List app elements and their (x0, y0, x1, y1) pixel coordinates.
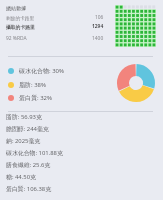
staticText: 蛋白質: 106.38克 (6, 185, 52, 193)
staticText: 脂肪: 38% (19, 81, 47, 89)
staticText: 鈉: 2025毫克 (6, 137, 41, 145)
staticText: 膳食纖維: 25.6克 (6, 161, 51, 169)
other: colour swatch (8, 68, 14, 74)
button[interactable]: 糖: 44.50克 (0, 171, 163, 183)
button[interactable]: 膽固醇: 244毫克 (0, 123, 163, 135)
other: colour swatch (8, 82, 14, 88)
button[interactable]: colour swatch (8, 92, 98, 104)
staticText: 1294 (92, 23, 104, 30)
staticText: 剩餘的卡路里 (6, 15, 35, 21)
button[interactable]: 92 %RDA (6, 34, 104, 43)
staticText: 糖: 44.50克 (6, 173, 36, 181)
other: colour swatch (8, 95, 14, 101)
staticText: 1400 (92, 35, 104, 42)
button[interactable]: 脂肪: 56.93克 (0, 111, 163, 123)
button[interactable]: 膳食纖維: 25.6克 (0, 159, 163, 171)
button[interactable]: colour swatch (8, 65, 98, 77)
button[interactable]: 碳水化合物: 101.88克 (0, 147, 163, 159)
button[interactable]: colour swatch (8, 79, 98, 91)
staticText: 碳水化合物: 101.88克 (6, 149, 63, 157)
staticText: 蛋白質: 32% (19, 94, 53, 102)
staticText: 總結數據 (6, 5, 27, 11)
staticText: 攝取的卡路里 (6, 24, 35, 30)
button[interactable]: 鈉: 2025毫克 (0, 135, 163, 147)
staticText: 92 %RDA (6, 35, 27, 42)
staticText: 脂肪: 56.93克 (6, 113, 42, 121)
button[interactable]: 攝取的卡路里 (6, 22, 104, 31)
button[interactable]: 剩餘的卡路里 (6, 13, 104, 22)
staticText: 106 (95, 14, 104, 21)
staticText: 膽固醇: 244毫克 (6, 125, 49, 133)
button[interactable]: 蛋白質: 106.38克 (0, 183, 163, 195)
staticText: 碳水化合物: 30% (19, 67, 65, 75)
